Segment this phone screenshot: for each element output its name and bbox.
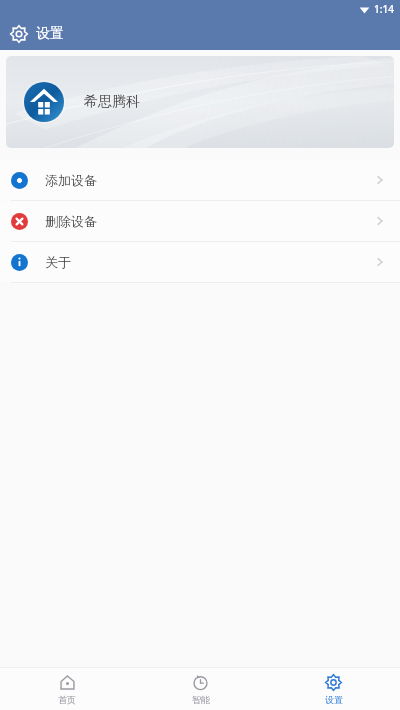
staticText: 删除设备 <box>45 213 97 229</box>
button[interactable]: 添加设备 <box>0 160 400 200</box>
button[interactable]: 关于 <box>0 242 400 282</box>
staticText: 智能 <box>192 694 210 705</box>
staticText: 添加设备 <box>45 172 97 188</box>
staticText: 首页 <box>58 694 76 705</box>
staticText: 希思腾科 <box>84 93 140 111</box>
staticText: 关于 <box>45 254 71 270</box>
other: Home <box>22 80 66 124</box>
button[interactable]: 设置 <box>267 668 400 710</box>
button[interactable]: 删除设备 <box>0 201 400 241</box>
staticText: 1:14 <box>374 2 394 16</box>
staticText: 设置 <box>36 25 64 43</box>
other: Settings <box>10 25 28 43</box>
staticText: 设置 <box>325 694 343 705</box>
button[interactable]: 智能 <box>134 668 267 710</box>
button[interactable]: Home <box>6 56 394 148</box>
button[interactable]: 首页 <box>0 668 134 710</box>
